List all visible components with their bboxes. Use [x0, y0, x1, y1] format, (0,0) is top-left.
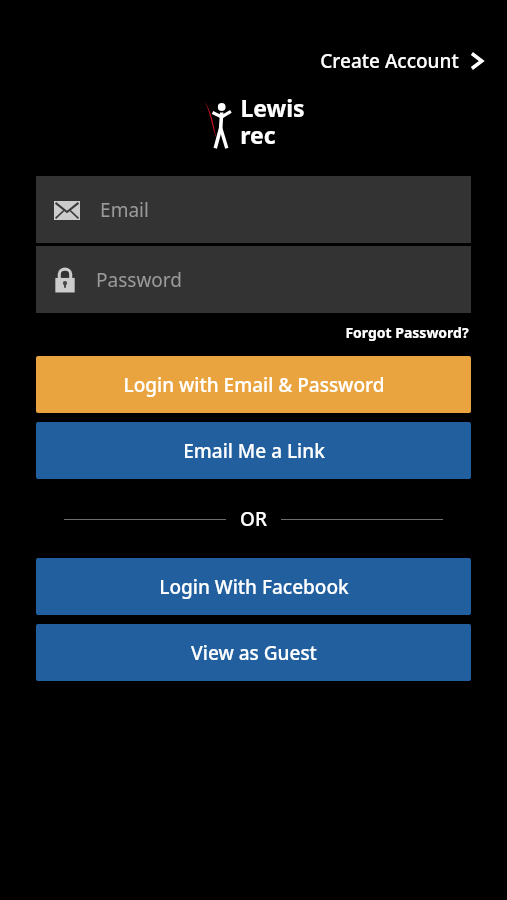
staticText: Password: [96, 267, 182, 293]
button[interactable]: Email Me a Link: [36, 422, 471, 479]
staticText: Email Me a Link: [183, 438, 325, 464]
staticText: rec: [240, 119, 276, 150]
button[interactable]: Forgot Password?: [343, 321, 471, 344]
button[interactable]: Create Account: [316, 44, 489, 78]
staticText: Login With Facebook: [159, 574, 349, 600]
staticText: Create Account: [320, 48, 459, 74]
button[interactable]: Email: [36, 176, 471, 243]
button[interactable]: Password: [36, 246, 471, 313]
button[interactable]: Login with Email & Password: [36, 356, 471, 413]
staticText: Lewis: [240, 92, 305, 123]
other: Email: [54, 201, 80, 220]
button[interactable]: View as Guest: [36, 624, 471, 681]
button[interactable]: Login With Facebook: [36, 558, 471, 615]
staticText: OR: [240, 506, 267, 532]
staticText: View as Guest: [191, 640, 317, 666]
staticText: Forgot Password?: [345, 323, 469, 342]
other: Password: [54, 267, 76, 293]
staticText: Login with Email & Password: [123, 372, 385, 398]
staticText: Email: [100, 197, 149, 223]
other: Lewis Rec logo: [203, 96, 237, 151]
